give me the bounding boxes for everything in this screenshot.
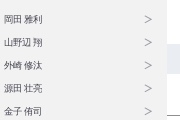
staticText: 外崎 修汰 bbox=[4, 60, 42, 71]
button[interactable]: 岡田 雅利 bbox=[0, 8, 167, 31]
button[interactable]: 山野辺 翔 bbox=[0, 31, 167, 54]
staticText: 源田 壮亮 bbox=[4, 83, 42, 94]
staticText: 岡田 雅利 bbox=[4, 14, 42, 25]
button[interactable]: 金子 侑司 bbox=[0, 100, 167, 120]
staticText: 山野辺 翔 bbox=[4, 37, 42, 48]
staticText: 金子 侑司 bbox=[4, 106, 42, 117]
button[interactable]: 外崎 修汰 bbox=[0, 54, 167, 77]
button[interactable]: 源田 壮亮 bbox=[0, 77, 167, 100]
